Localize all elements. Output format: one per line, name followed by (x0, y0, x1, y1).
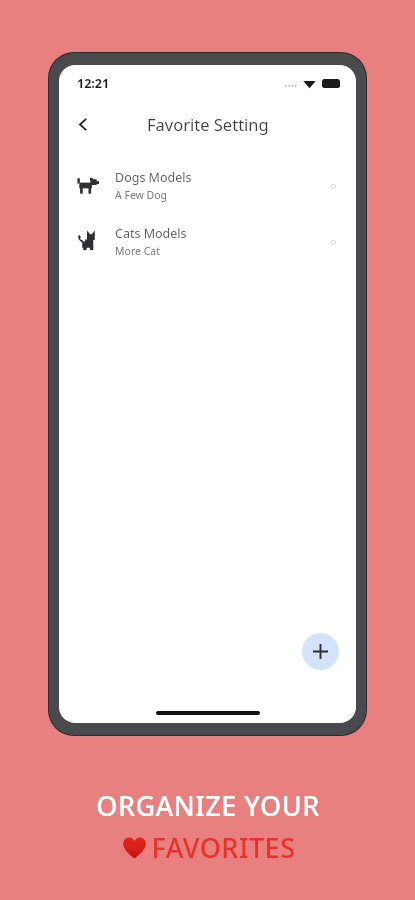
staticText: Dogs Models (115, 169, 192, 186)
staticText: ORGANIZE YOUR (96, 787, 320, 824)
staticText: FAVORITES (151, 829, 296, 866)
staticText: A Few Dog (115, 188, 168, 202)
staticText: ○ (331, 238, 337, 245)
button[interactable]: Dogs Models (59, 157, 356, 213)
staticText: More Cat (115, 244, 160, 258)
staticText: ○ (331, 182, 337, 189)
staticText: Favorite Setting (147, 113, 269, 135)
button[interactable]: Add favorite (302, 633, 339, 670)
staticText: Cats Models (115, 225, 187, 242)
staticText: 12:21 (77, 75, 110, 92)
button[interactable]: Back (65, 106, 101, 142)
button[interactable]: Cats Models (59, 213, 356, 269)
